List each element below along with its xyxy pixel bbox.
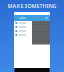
staticText: MAKE SOMETHING (7, 2, 56, 10)
